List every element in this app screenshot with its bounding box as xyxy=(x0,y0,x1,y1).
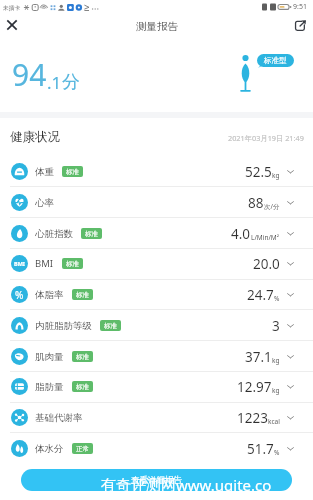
button[interactable]: 体水分 xyxy=(0,433,313,464)
staticText: BMI xyxy=(14,260,25,267)
staticText: 标准 xyxy=(76,291,89,299)
staticText: 正常 xyxy=(76,445,89,453)
staticText: 9:51 xyxy=(293,2,307,12)
staticText: 基础代谢率 xyxy=(35,412,83,424)
staticText: 内脏脂肪等级 xyxy=(35,320,92,332)
staticText: 查看详细报告 xyxy=(131,475,182,486)
staticText: 体脂率 xyxy=(35,289,64,301)
staticText: 3 xyxy=(272,317,280,335)
staticText: 12.97 xyxy=(237,378,272,396)
staticText: 脂肪量 xyxy=(35,381,64,393)
staticText: 健康状况 xyxy=(10,129,60,145)
staticText: % xyxy=(15,288,24,302)
button[interactable]: 查看详细报告 xyxy=(21,469,292,491)
button[interactable]: 肌肉量 xyxy=(0,341,313,372)
staticText: % xyxy=(274,294,280,303)
staticText: 标准 xyxy=(104,322,117,330)
staticText: .1 xyxy=(47,71,62,94)
button[interactable]: 基础代谢率 xyxy=(0,402,313,433)
button[interactable]: Share xyxy=(290,15,310,35)
staticText: 有奇评测网 xyxy=(101,476,176,495)
staticText: % xyxy=(274,448,280,457)
staticText: 4.0 xyxy=(231,225,251,243)
staticText: www.ugite.co xyxy=(176,475,272,495)
button[interactable]: 心脏指数 xyxy=(0,218,313,249)
staticText: 标准 xyxy=(85,230,98,238)
staticText: kcal xyxy=(268,417,280,426)
button[interactable]: 心率 xyxy=(0,187,313,218)
staticText: 51.7 xyxy=(247,440,274,458)
button[interactable]: 体重 xyxy=(0,156,313,187)
staticText: 心脏指数 xyxy=(35,228,73,240)
staticText: BMI xyxy=(35,257,54,270)
staticText: kg xyxy=(272,386,280,395)
staticText: 52.5 xyxy=(245,163,272,181)
staticText: 体重 xyxy=(35,166,54,178)
staticText: 测量报告 xyxy=(136,20,178,33)
staticText: 分 xyxy=(62,71,80,94)
staticText: 37.1 xyxy=(245,348,272,366)
staticText: 24.7 xyxy=(247,286,274,304)
staticText: 1223 xyxy=(237,409,268,427)
button[interactable]: 内脏脂肪等级 xyxy=(0,310,313,341)
button[interactable]: Close xyxy=(2,15,22,35)
button[interactable]: 脂肪量 xyxy=(0,371,313,402)
staticText: 标准 xyxy=(66,260,79,268)
staticText: 标准 xyxy=(66,168,79,176)
staticText: kg xyxy=(272,171,280,180)
staticText: 体水分 xyxy=(35,443,64,455)
staticText: 标准 xyxy=(76,353,89,361)
staticText: L/Min/M² xyxy=(251,233,280,242)
button[interactable]: % xyxy=(0,279,313,310)
staticText: kg xyxy=(272,356,280,365)
staticText: 94 xyxy=(12,54,47,95)
staticText: 肌肉量 xyxy=(35,351,64,363)
staticText: 心率 xyxy=(35,197,54,209)
staticText: 标准 xyxy=(76,383,89,391)
staticText: 2021年03月19日 21:49 xyxy=(228,133,304,143)
button[interactable]: BMI xyxy=(0,248,313,279)
staticText: 88 xyxy=(248,194,264,212)
staticText: 次/分 xyxy=(264,202,280,211)
staticText: 20.0 xyxy=(253,255,280,273)
staticText: 标准型 xyxy=(264,56,287,65)
staticText: 未插卡 xyxy=(3,4,21,11)
